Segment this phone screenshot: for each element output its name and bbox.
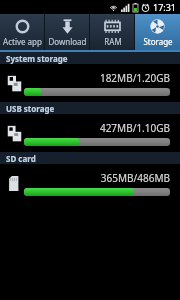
- button[interactable]: Storage: [135, 14, 180, 50]
- staticText: RAM: [104, 36, 122, 47]
- staticText: 17:31: [153, 1, 177, 13]
- staticText: Storage: [143, 36, 173, 47]
- other: USB storage: [7, 125, 22, 142]
- button[interactable]: RAM: [90, 14, 135, 50]
- button[interactable]: System storage: [0, 52, 180, 102]
- staticText: 427MB/1.10GB: [24, 121, 170, 135]
- button[interactable]: SD card: [0, 152, 180, 202]
- staticText: SD card: [6, 153, 36, 164]
- button[interactable]: Download: [45, 14, 90, 50]
- staticText: 182MB/1.20GB: [24, 71, 170, 85]
- button[interactable]: Active app: [0, 14, 45, 50]
- staticText: System storage: [6, 53, 68, 64]
- staticText: USB storage: [6, 103, 55, 114]
- other: System storage: [7, 75, 22, 92]
- staticText: Active app: [3, 36, 42, 47]
- other: SD card: [7, 175, 22, 192]
- button[interactable]: USB storage: [0, 102, 180, 152]
- staticText: 365MB/486MB: [24, 171, 170, 185]
- staticText: Download: [48, 36, 87, 47]
